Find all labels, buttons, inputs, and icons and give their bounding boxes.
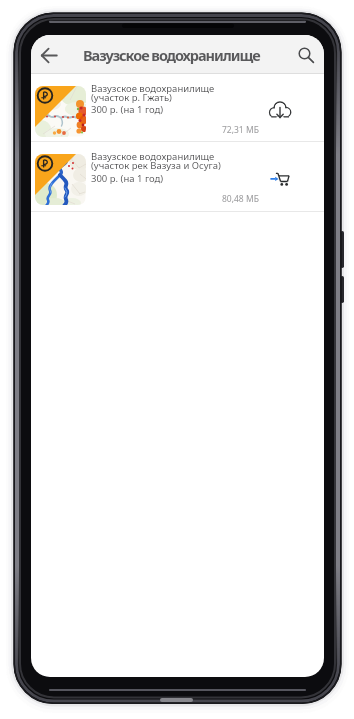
button[interactable]: Вазузское водохранилище bbox=[31, 142, 324, 211]
staticText: Вазузское водохранилище bbox=[91, 150, 215, 163]
button[interactable]: Вазузское водохранилище bbox=[31, 74, 324, 141]
staticText: 72,31 МБ bbox=[222, 124, 259, 136]
staticText: 300 р. (на 1 год) bbox=[91, 103, 164, 116]
staticText: (участок р. Гжать) bbox=[91, 91, 172, 104]
staticText: (участок рек Вазуза и Осуга) bbox=[91, 159, 221, 172]
staticText: Вазузское водохранилище bbox=[91, 82, 215, 95]
button[interactable] bbox=[289, 38, 321, 70]
button[interactable] bbox=[35, 41, 63, 69]
button[interactable] bbox=[264, 94, 296, 126]
staticText: 80,48 МБ bbox=[222, 193, 259, 205]
staticText: 300 р. (на 1 год) bbox=[91, 172, 164, 185]
button[interactable] bbox=[264, 163, 296, 195]
staticText: Вазузское водохранилище bbox=[83, 45, 260, 65]
